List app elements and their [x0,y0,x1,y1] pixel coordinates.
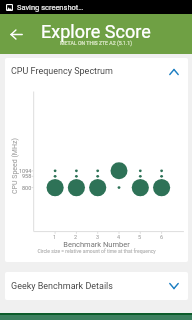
button[interactable]: Geeky Benchmark Details [5,272,188,300]
staticText: METAL ON THIS ZTE A2 (5.1.1) [60,40,133,46]
staticText: 800 [22,185,32,191]
staticText: Saving screenshot… [17,3,84,12]
staticText: 1 [53,234,57,240]
staticText: CPU Speed (MHz) [11,138,19,194]
staticText: 958 [22,173,32,179]
staticText: Benchmark Number [63,240,130,249]
button[interactable]: Navigate up [3,21,29,47]
staticText: 2 [74,234,78,240]
staticText: Circle size = relative amount of time at… [37,248,156,254]
staticText: 5 [138,234,142,240]
staticText: 1094 [19,168,32,174]
staticText: Explore Score [41,21,151,42]
staticText: 4 [117,234,121,240]
staticText: 6 [160,234,164,240]
button[interactable]: CPU Frequency Spectrum [5,58,188,85]
staticText: CPU Frequency Spectrum [11,66,113,77]
staticText: Geeky Benchmark Details [11,281,113,292]
staticText: 3 [96,234,100,240]
button[interactable]: Expand [162,274,186,298]
button[interactable]: Collapse [162,60,186,84]
